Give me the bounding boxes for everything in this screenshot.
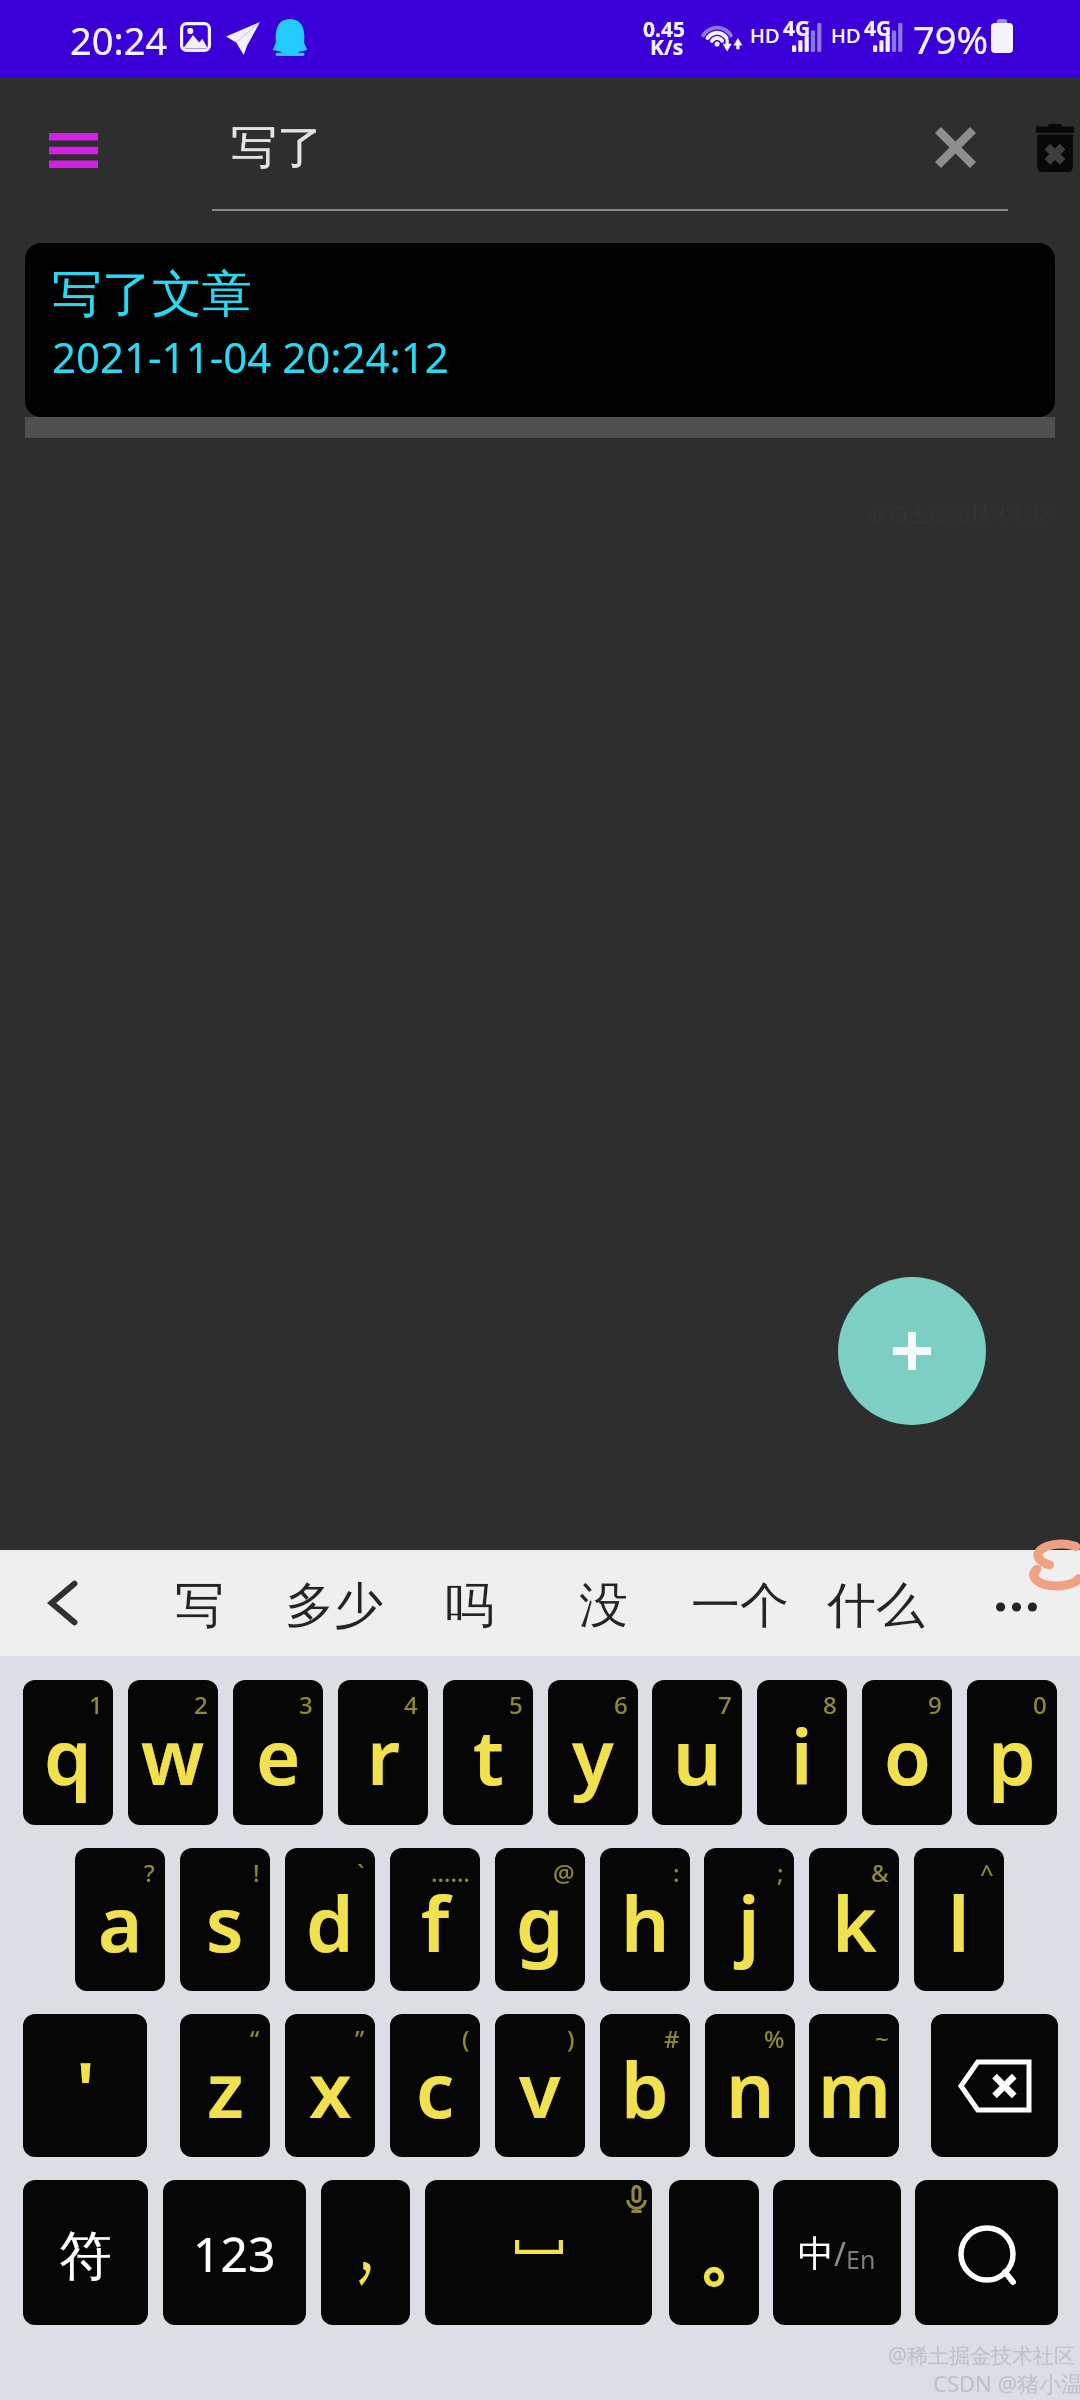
button[interactable]: More candidates (974, 1566, 1058, 1648)
staticText: 写了 (231, 119, 323, 177)
staticText: 123 (193, 2221, 276, 2286)
button[interactable]: h (600, 1848, 690, 1991)
staticText: ( (462, 2022, 470, 2055)
staticText: 没 (579, 1575, 628, 1637)
staticText: En (846, 2242, 876, 2276)
staticText: g (516, 1871, 564, 1975)
staticText: w (141, 1704, 205, 1808)
button[interactable]: r (338, 1680, 428, 1825)
button[interactable]: i (757, 1680, 847, 1825)
button[interactable]: Clear (899, 91, 1011, 203)
button[interactable]: 写了文章 (25, 243, 1055, 417)
button[interactable]: x (285, 2014, 375, 2157)
button[interactable]: y (548, 1680, 638, 1825)
staticText: ? (144, 1856, 155, 1889)
button[interactable]: 没 (563, 1563, 644, 1649)
staticText: 2021-11-04 20:24:12 (52, 328, 449, 385)
staticText: b (621, 2037, 669, 2141)
button[interactable]: Comma (321, 2180, 410, 2325)
staticText: s (206, 1871, 244, 1975)
staticText: 0.45 (643, 15, 685, 44)
staticText: u (673, 1704, 722, 1808)
staticText: o (884, 1704, 931, 1808)
staticText: 20:24 (70, 14, 168, 66)
button[interactable]: 写 (159, 1563, 240, 1649)
staticText: l (948, 1871, 970, 1975)
button[interactable]: k (809, 1848, 899, 1991)
staticText: 中 (798, 2231, 834, 2276)
staticText: HD (831, 22, 861, 49)
staticText: 5 (509, 1688, 523, 1721)
staticText: % (764, 2022, 785, 2055)
button[interactable]: b (600, 2014, 690, 2157)
button[interactable]: e (233, 1680, 323, 1825)
staticText: 多少 (285, 1575, 383, 1637)
staticText: @稀土掘金技术社区 (888, 2341, 1075, 2370)
staticText: a (98, 1871, 143, 1975)
button[interactable]: Switch language (773, 2180, 901, 2325)
staticText: 2 (194, 1688, 208, 1721)
button[interactable]: l (914, 1848, 1004, 1991)
staticText: 79% (913, 13, 989, 65)
staticText: @ (553, 1856, 575, 1889)
button[interactable]: ' (23, 2014, 147, 2157)
button[interactable]: g (495, 1848, 585, 1991)
button[interactable]: s (180, 1848, 270, 1991)
button[interactable]: 一个 (675, 1563, 805, 1649)
button[interactable]: u (652, 1680, 742, 1825)
staticText: CSDN @猪小温 (933, 2368, 1080, 2398)
staticText: z (207, 2037, 244, 2141)
button[interactable]: Period (669, 2180, 759, 2325)
button[interactable]: 符 (23, 2180, 148, 2325)
button[interactable]: n (705, 2014, 795, 2157)
button[interactable]: o (862, 1680, 952, 1825)
staticText: : (673, 1856, 680, 1889)
button[interactable]: 多少 (269, 1563, 399, 1649)
button[interactable]: Add (838, 1277, 986, 1425)
button[interactable]: 吗 (429, 1563, 510, 1649)
staticText: ' (76, 2037, 95, 2141)
staticText: t (473, 1704, 504, 1808)
button[interactable]: a (75, 1848, 165, 1991)
staticText: f (421, 1871, 450, 1975)
button[interactable]: 什么 (811, 1563, 941, 1649)
staticText: i (791, 1704, 813, 1808)
button[interactable]: c (390, 2014, 480, 2157)
button[interactable]: j (704, 1848, 794, 1991)
staticText: 7 (718, 1688, 732, 1721)
staticText: 6 (614, 1688, 628, 1721)
button[interactable]: d (285, 1848, 375, 1991)
button[interactable]: f (390, 1848, 480, 1991)
staticText: “ (250, 2022, 260, 2055)
staticText: ~ (875, 2022, 889, 2055)
button[interactable]: v (495, 2014, 585, 2157)
staticText: k (832, 1871, 877, 1975)
button[interactable]: t (443, 1680, 533, 1825)
staticText: p (988, 1704, 1036, 1808)
button[interactable]: q (23, 1680, 113, 1825)
staticText: h (621, 1871, 670, 1975)
staticText: v (519, 2037, 561, 2141)
staticText: HD (750, 22, 780, 49)
staticText: ` (357, 1856, 365, 1889)
staticText: q (44, 1704, 92, 1808)
staticText: ) (567, 2022, 575, 2055)
staticText: r (367, 1704, 400, 1808)
staticText: 写 (175, 1575, 224, 1637)
staticText: 8 (823, 1688, 837, 1721)
button[interactable]: Space (425, 2180, 652, 2325)
button[interactable]: m (809, 2014, 899, 2157)
button[interactable]: z (180, 2014, 270, 2157)
staticText: y (572, 1704, 614, 1808)
button[interactable]: Menu (13, 93, 133, 207)
button[interactable]: Search (915, 2180, 1058, 2325)
button[interactable]: Delete (1018, 100, 1080, 196)
button[interactable]: w (128, 1680, 218, 1825)
button[interactable]: 123 (163, 2180, 306, 2325)
staticText: n (726, 2037, 775, 2141)
button[interactable]: p (967, 1680, 1057, 1825)
button[interactable]: Backspace (931, 2014, 1058, 2157)
staticText: 3 (299, 1688, 313, 1721)
staticText: m (818, 2037, 891, 2141)
